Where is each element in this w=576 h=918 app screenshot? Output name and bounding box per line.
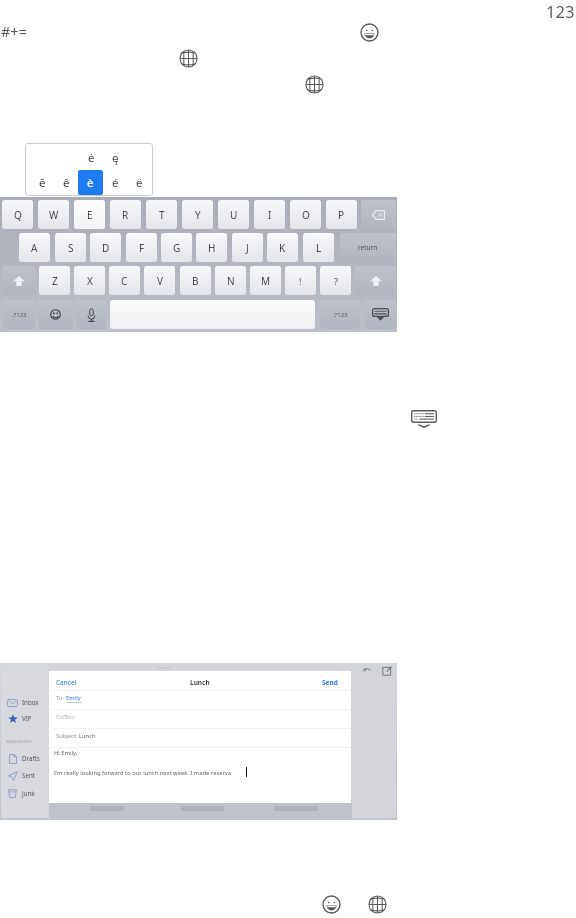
button[interactable]: ė (79, 146, 103, 170)
staticText: I'm really looking forward to our lunch … (54, 769, 232, 777)
other: Hide keyboard (372, 308, 389, 321)
button[interactable]: M (250, 266, 281, 295)
button[interactable]: ē (30, 171, 54, 195)
staticText: G (173, 241, 181, 255)
button[interactable]: Inbox (1, 694, 48, 710)
staticText: é (112, 175, 119, 191)
other: Shift (13, 276, 25, 286)
button[interactable]: Q (2, 200, 33, 229)
button[interactable]: D (90, 233, 121, 262)
button[interactable]: Emoji keyboard (360, 23, 379, 42)
staticText: Junk (22, 789, 35, 797)
button[interactable]: R (110, 200, 141, 229)
button[interactable]: C (109, 266, 140, 295)
button[interactable]: F (126, 233, 157, 262)
button[interactable]: Emoji keyboard (322, 895, 341, 914)
staticText: R (122, 208, 129, 222)
staticText: U (230, 208, 238, 222)
button[interactable]: Y (182, 200, 213, 229)
staticText: A (31, 241, 38, 255)
staticText: Z (52, 274, 58, 288)
button[interactable]: ! (285, 266, 316, 295)
staticText: I (268, 208, 272, 222)
button[interactable]: O (290, 200, 321, 229)
button[interactable]: Dictate (76, 300, 106, 329)
staticText: H (208, 241, 216, 255)
staticText: Y (195, 208, 201, 222)
button[interactable]: Shift (355, 266, 396, 295)
button[interactable]: Drafts (1, 750, 48, 766)
button[interactable]: Change keyboard language (305, 75, 324, 94)
button[interactable]: X (74, 266, 105, 295)
other: Dictate (87, 308, 96, 322)
button[interactable]: U (218, 200, 249, 229)
staticText: è (87, 175, 94, 191)
staticText: X (87, 274, 93, 288)
button[interactable]: Junk (1, 785, 48, 801)
staticText: Inbox (22, 698, 39, 706)
button[interactable]: H (196, 233, 227, 262)
button[interactable]: VIP (1, 710, 48, 726)
staticText: Lunch (79, 732, 96, 740)
button[interactable]: K (267, 233, 298, 262)
button[interactable]: P (326, 200, 357, 229)
button[interactable]: Send (322, 678, 338, 687)
staticText: S (68, 241, 74, 255)
staticText: Q (14, 208, 22, 222)
button[interactable]: Z (39, 266, 70, 295)
staticText: P (338, 208, 345, 222)
button[interactable]: è (78, 170, 103, 195)
button[interactable]: é (103, 171, 127, 195)
button[interactable]: B (180, 266, 211, 295)
staticText: V (157, 274, 163, 288)
other: Reply (362, 666, 372, 675)
staticText: Cc/Bcc: (56, 713, 76, 721)
button[interactable]: Change keyboard language (368, 895, 387, 914)
button[interactable]: J (232, 233, 263, 262)
button[interactable]: Shift (2, 266, 35, 295)
staticText: ę (112, 150, 119, 166)
button[interactable]: ë (127, 171, 151, 195)
button[interactable]: L (303, 233, 334, 262)
staticText: ! (299, 275, 302, 287)
staticText: O (302, 208, 310, 222)
button[interactable]: ? (320, 266, 351, 295)
button[interactable]: Space (110, 300, 315, 329)
button[interactable]: I (254, 200, 285, 229)
staticText: return (358, 243, 378, 252)
button[interactable]: Backspace (361, 200, 396, 229)
button[interactable]: Hide keyboard (365, 300, 396, 329)
staticText: Emily (66, 694, 81, 702)
staticText: J (246, 241, 249, 255)
button[interactable]: .?123 (320, 300, 360, 329)
staticText: Lunch (158, 665, 170, 670)
button[interactable]: Change keyboard language (179, 49, 198, 68)
button[interactable]: V (144, 266, 175, 295)
button[interactable]: G (161, 233, 192, 262)
button[interactable]: Hide keyboard (411, 410, 437, 429)
staticText: K (279, 241, 286, 255)
button[interactable]: Sent (1, 767, 48, 783)
button[interactable]: N (215, 266, 246, 295)
staticText: W (49, 208, 59, 222)
button[interactable]: A (19, 233, 50, 262)
staticText: Lunch (190, 678, 210, 687)
staticText: VIP (22, 714, 32, 722)
button[interactable]: ê (54, 171, 78, 195)
button[interactable]: Cancel (56, 678, 77, 687)
other: Compose (382, 666, 392, 676)
staticText: Hi Emily, (54, 749, 78, 757)
staticText: 123 (546, 0, 575, 22)
button[interactable]: return (340, 233, 396, 262)
button[interactable]: E (74, 200, 105, 229)
button[interactable]: Emoji (38, 300, 73, 329)
staticText: Drafts (22, 754, 40, 762)
button[interactable]: W (38, 200, 69, 229)
button[interactable]: .?123 (3, 300, 35, 329)
button[interactable]: S (55, 233, 86, 262)
button[interactable]: ę (103, 146, 127, 170)
staticText: MAILBOXES (6, 739, 32, 745)
button[interactable]: T (146, 200, 177, 229)
staticText: E (87, 208, 93, 222)
staticText: Sent (22, 771, 35, 779)
